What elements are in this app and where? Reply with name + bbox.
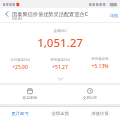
staticText: 国泰聚信价值优势灵活配置混合C [12,10,88,17]
staticText: 持有收益率 [80,57,120,61]
staticText: 今日收益(元) [0,57,40,62]
staticText: 详情 [110,13,118,18]
staticText: 金额(元) [0,28,120,33]
staticText: 收益明细 [0,96,60,101]
button[interactable]: 收益明细 [0,85,60,104]
staticText: +5.13% [80,63,120,70]
staticText: 持有收益(元) [40,57,80,62]
button[interactable]: 展开 [0,76,120,82]
staticText: 1,051.27 [0,35,120,51]
button[interactable]: 累计盈亏 [0,107,40,120]
staticText: +51.27 [40,64,80,71]
staticText: 净值估算 [80,111,120,117]
button[interactable]: 返回 [2,9,12,19]
button[interactable]: 交易记录 [60,85,120,104]
button[interactable]: 净值估算 [80,107,120,120]
staticText: 000363 [12,17,23,21]
button[interactable]: 详情 [109,11,119,20]
staticText: 交易记录 [60,96,120,101]
button[interactable]: 业绩走势 [40,107,80,120]
staticText: 业绩走势 [40,111,80,117]
staticText: +25.90 [0,64,40,71]
staticText: 累计盈亏 [0,111,40,117]
